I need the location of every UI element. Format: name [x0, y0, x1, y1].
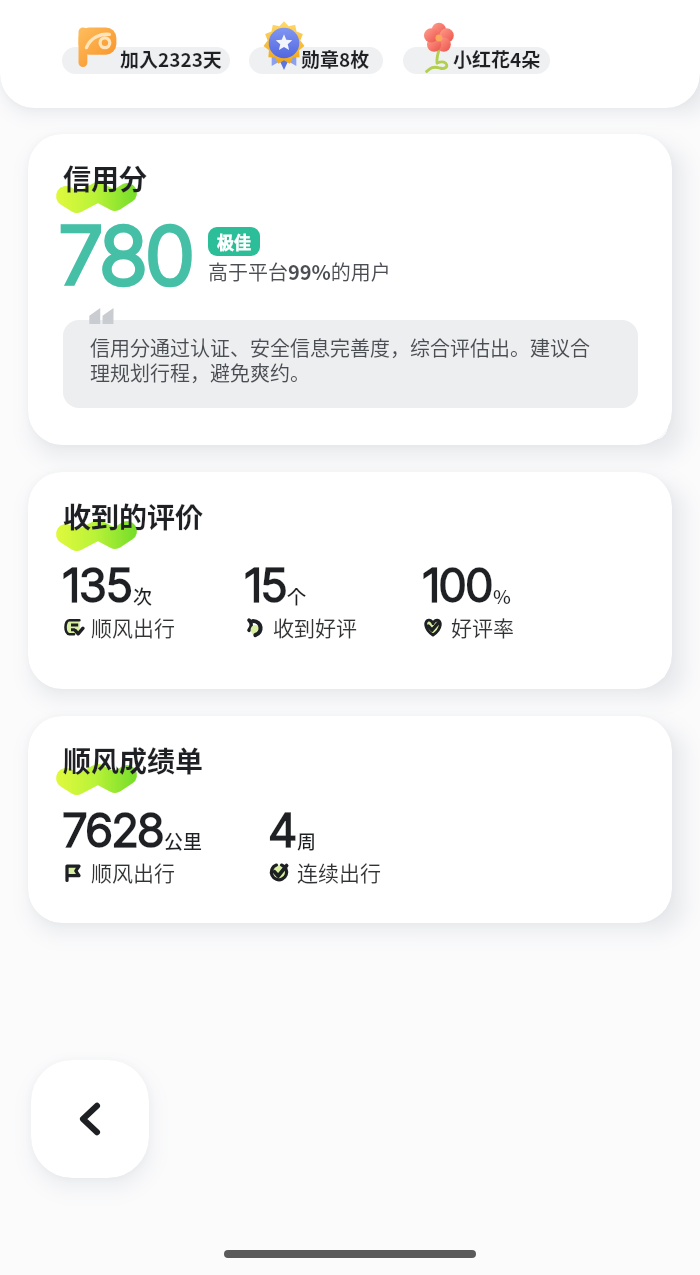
staticText: 780 — [60, 207, 194, 305]
staticText: 周 — [297, 827, 317, 855]
staticText: 好评率 — [451, 612, 514, 642]
staticText: 个 — [287, 582, 307, 610]
button[interactable]: 小红花4朵 — [403, 47, 550, 74]
button[interactable]: 勋章8枚 — [249, 47, 383, 74]
staticText: 连续出行 — [297, 857, 381, 887]
staticText: 次 — [133, 582, 153, 610]
staticText: 顺风出行 — [91, 857, 175, 887]
staticText: 7628 — [63, 802, 164, 858]
staticText: 顺风出行 — [91, 612, 175, 642]
staticText: 勋章8枚 — [301, 47, 370, 72]
staticText: 信用分 — [63, 158, 148, 199]
staticText: 收到的评价 — [63, 496, 204, 537]
staticText: 信用分通过认证、安全信息完善度，综合评估出。建议合 理规划行程，避免爽约。 — [90, 333, 590, 387]
staticText: 15 — [245, 557, 287, 613]
staticText: % — [493, 582, 511, 610]
button[interactable]: 加入2323天 — [62, 47, 230, 74]
staticText: 收到好评 — [273, 612, 357, 642]
staticText: 100 — [423, 557, 493, 613]
staticText: 加入2323天 — [120, 47, 222, 72]
staticText: 4 — [269, 802, 297, 858]
staticText: 极佳 — [217, 229, 251, 254]
staticText: 高于平台99%的用户 — [208, 257, 391, 286]
staticText: 顺风成绩单 — [63, 740, 204, 781]
staticText: 公里 — [164, 827, 203, 855]
staticText: 135 — [63, 557, 133, 613]
staticText: 小红花4朵 — [453, 47, 541, 72]
button[interactable]: Back — [31, 1060, 149, 1178]
